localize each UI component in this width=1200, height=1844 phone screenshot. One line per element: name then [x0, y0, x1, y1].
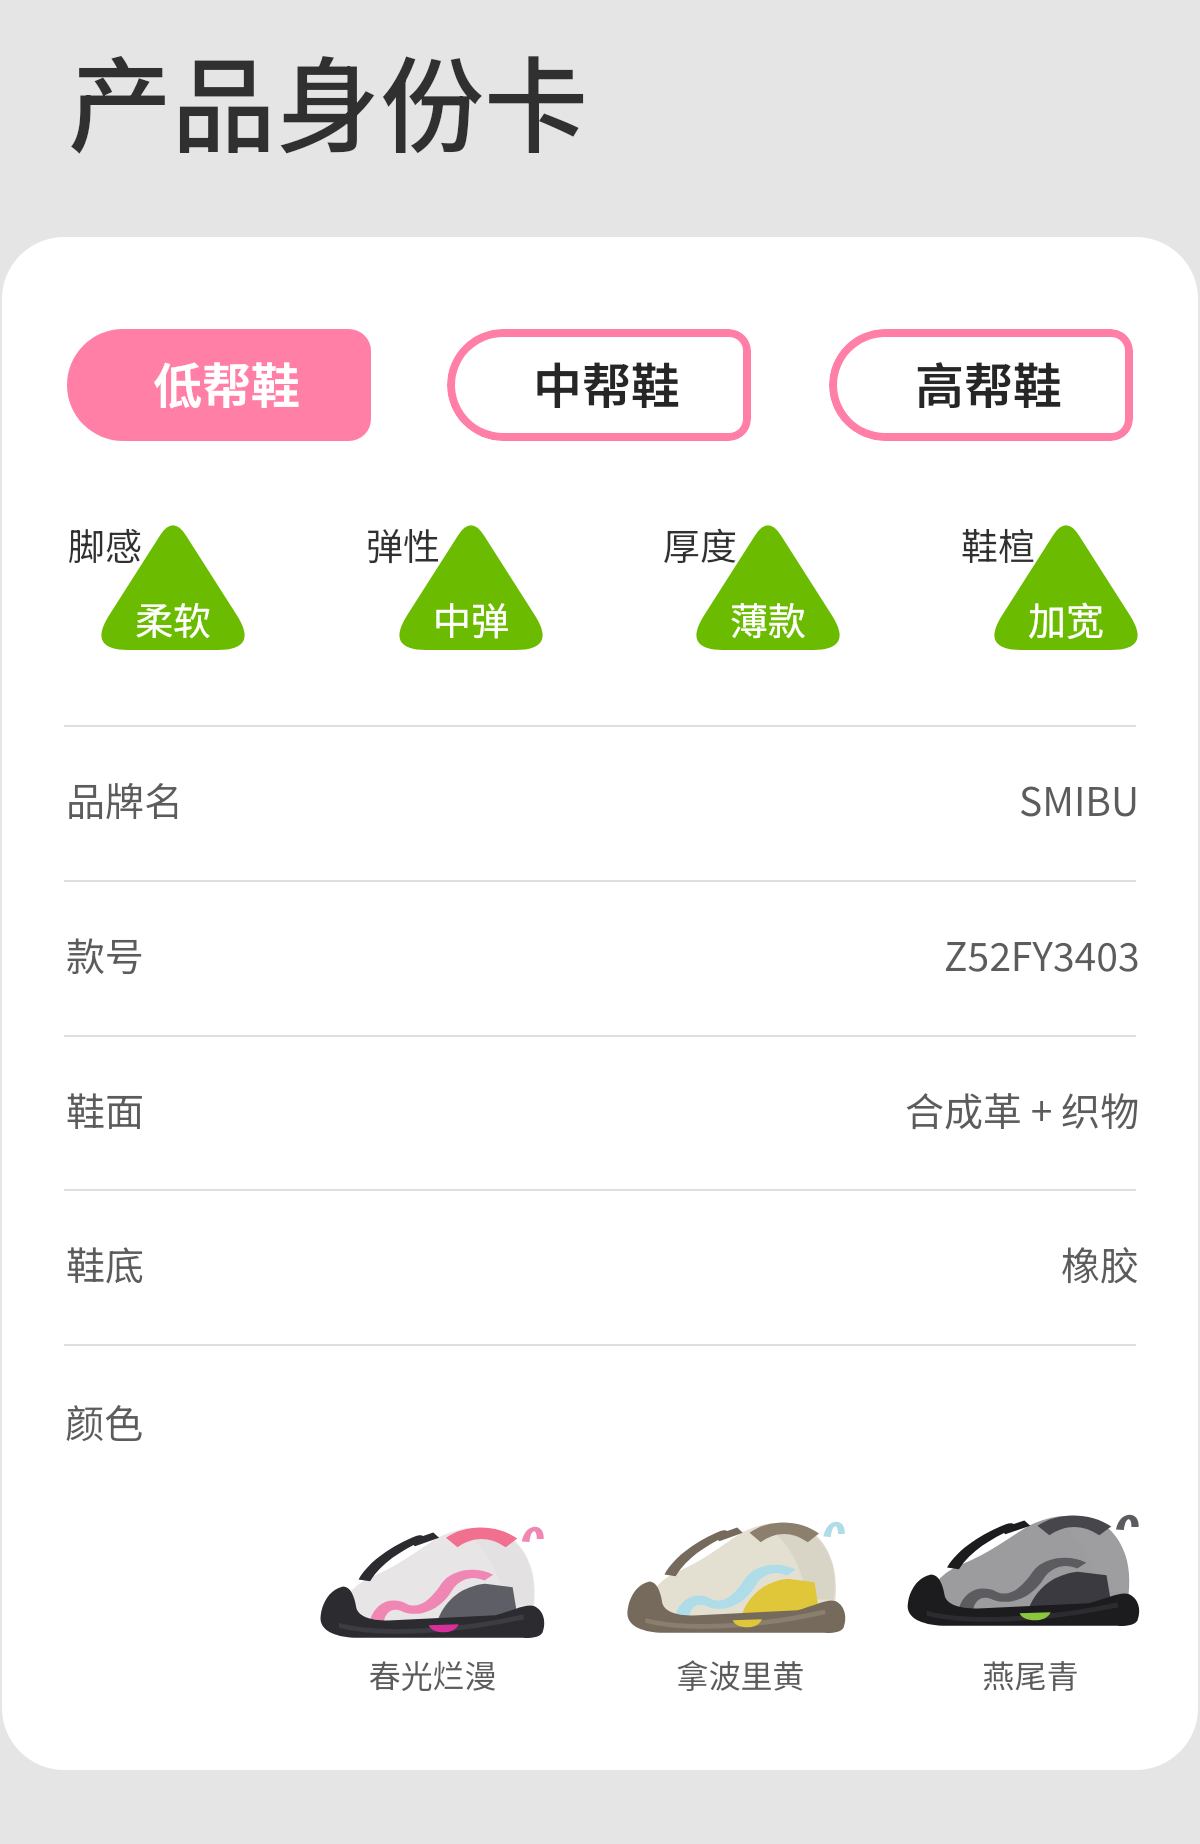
staticText: 春光烂漫: [368, 1651, 497, 1697]
staticText: 品牌名: [66, 771, 184, 827]
button[interactable]: 品牌名: [66, 722, 1140, 876]
button[interactable]: 燕尾青: [903, 1508, 1141, 1627]
staticText: 中帮鞋: [533, 347, 681, 418]
staticText: 燕尾青: [982, 1651, 1079, 1697]
staticText: 薄款: [730, 591, 807, 646]
staticText: 产品身份卡: [68, 23, 589, 174]
staticText: 中弹: [433, 591, 510, 646]
staticText: 拿波里黄: [676, 1651, 805, 1697]
staticText: 柔软: [135, 591, 212, 646]
button[interactable]: 中帮鞋: [447, 329, 751, 441]
button[interactable]: 鞋面: [66, 1032, 1140, 1186]
staticText: 鞋面: [66, 1081, 145, 1137]
button[interactable]: 拿波里黄: [623, 1515, 847, 1634]
staticText: 合成革 + 织物: [905, 1081, 1140, 1137]
staticText: 脚感: [68, 517, 142, 571]
button[interactable]: 高帮鞋: [829, 329, 1133, 441]
staticText: 加宽: [1028, 591, 1105, 646]
staticText: 款号: [66, 926, 145, 982]
button[interactable]: 款号: [66, 877, 1140, 1031]
staticText: SMIBU: [1019, 771, 1140, 827]
button[interactable]: 低帮鞋: [67, 329, 371, 441]
staticText: Z52FY3403: [944, 926, 1140, 982]
staticText: 鞋底: [66, 1235, 145, 1291]
staticText: 颜色: [65, 1393, 144, 1449]
staticText: 鞋楦: [961, 517, 1035, 571]
staticText: 低帮鞋: [153, 347, 301, 418]
staticText: 厚度: [663, 517, 737, 571]
staticText: 高帮鞋: [915, 347, 1063, 418]
button[interactable]: 鞋底: [66, 1186, 1140, 1340]
staticText: 橡胶: [1061, 1235, 1140, 1291]
button[interactable]: 春光烂漫: [316, 1520, 546, 1639]
staticText: 弹性: [366, 517, 440, 571]
